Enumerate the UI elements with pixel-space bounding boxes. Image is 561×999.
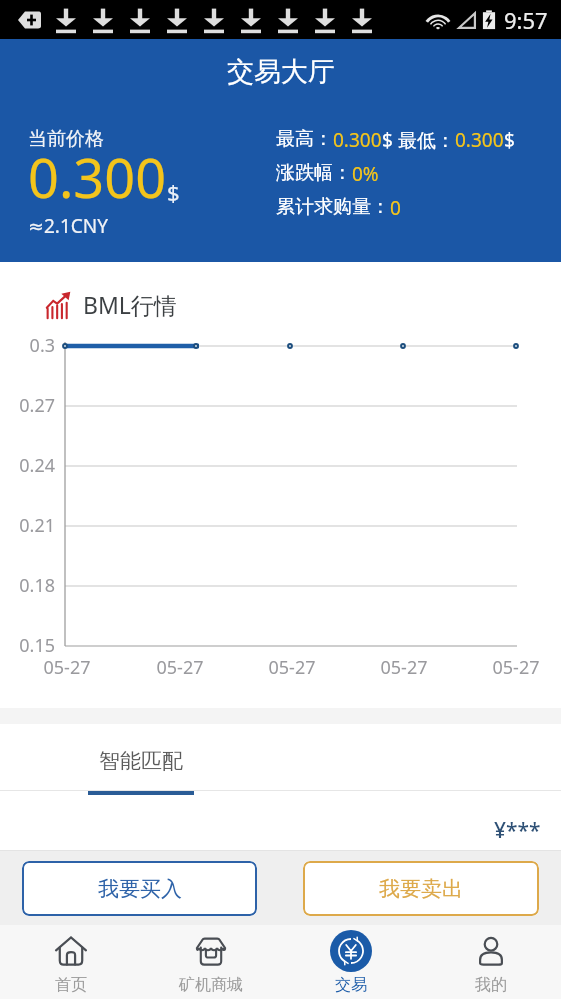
button[interactable]: 我要卖出 <box>303 861 539 916</box>
staticText: 0.18 <box>0 573 55 598</box>
staticText: 交易大厅 <box>227 55 335 89</box>
button[interactable]: 智能匹配 <box>88 724 194 795</box>
staticText: 0.24 <box>0 453 55 478</box>
staticText: $ <box>504 127 515 153</box>
staticText: 9:57 <box>504 5 548 35</box>
staticText: 05-27 <box>31 655 103 680</box>
staticText: 交易 <box>335 975 367 995</box>
staticText: 0.300 <box>333 127 382 153</box>
button[interactable]: 矿机商城 <box>141 930 281 995</box>
staticText: 涨跌幅： <box>276 161 352 185</box>
staticText: 05-27 <box>368 655 440 680</box>
staticText: 0.300 <box>455 127 504 153</box>
staticText: 我的 <box>475 975 507 995</box>
staticText: 当前价格 <box>28 127 104 151</box>
staticText: 最高： <box>276 127 333 151</box>
staticText: 0.21 <box>0 513 55 538</box>
staticText: 矿机商城 <box>179 975 243 995</box>
staticText: 05-27 <box>480 655 552 680</box>
staticText: 我要卖出 <box>379 876 463 902</box>
staticText: 0.300 <box>28 140 167 214</box>
staticText: 最低： <box>393 127 455 153</box>
staticText: BML行情 <box>83 289 177 320</box>
staticText: 智能匹配 <box>99 748 183 774</box>
staticText: ≈2.1CNY <box>28 213 108 239</box>
button[interactable]: 交易 <box>281 930 421 995</box>
button[interactable]: 我的 <box>421 930 561 995</box>
staticText: 0.27 <box>0 393 55 418</box>
staticText: 累计求购量： <box>276 195 390 219</box>
staticText: $ <box>382 127 393 153</box>
staticText: 我要买入 <box>98 876 182 902</box>
staticText: 0 <box>390 195 401 221</box>
staticText: 0% <box>352 161 379 187</box>
button[interactable]: 我要买入 <box>22 861 257 916</box>
staticText: 0.15 <box>0 633 55 658</box>
staticText: ¥*** <box>494 816 541 845</box>
staticText: 05-27 <box>256 655 328 680</box>
staticText: 05-27 <box>144 655 216 680</box>
staticText: $ <box>167 177 180 207</box>
staticText: 首页 <box>55 975 87 995</box>
staticText: 0.3 <box>0 333 55 358</box>
button[interactable]: 首页 <box>0 930 141 995</box>
